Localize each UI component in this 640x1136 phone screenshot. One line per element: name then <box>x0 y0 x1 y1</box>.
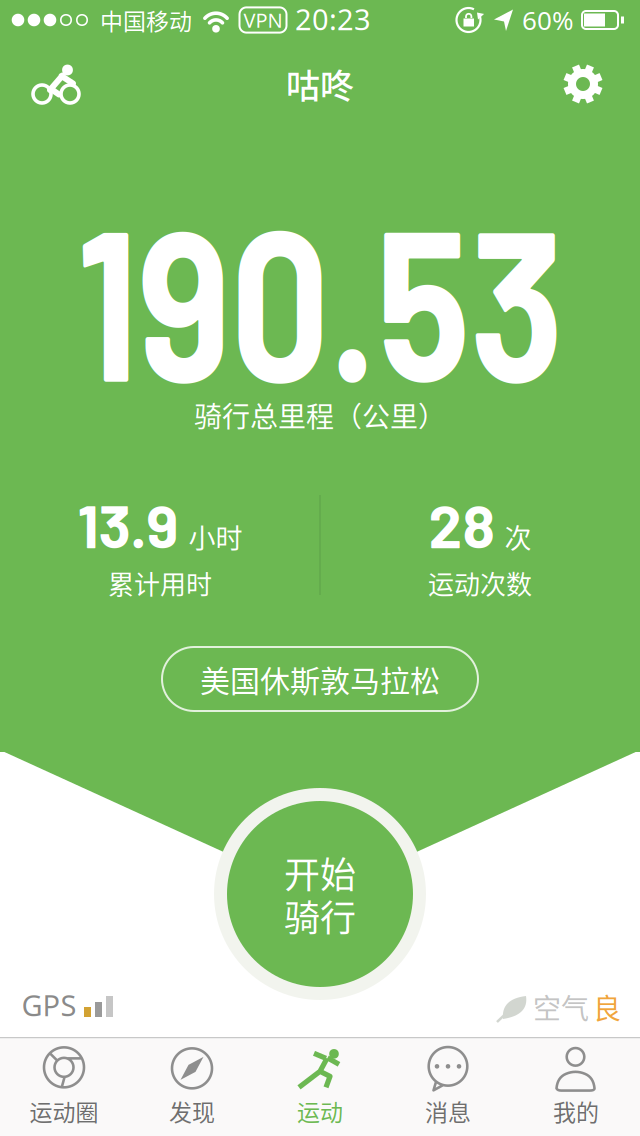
button[interactable]: 骑行记录 <box>22 52 94 116</box>
staticText: 发现 <box>169 1094 215 1128</box>
button[interactable]: 我的 <box>512 1038 640 1134</box>
staticText: 190.53 <box>23 170 617 424</box>
staticText: 小时 <box>188 517 242 556</box>
staticText: 累计用时 <box>108 564 212 602</box>
staticText: 28 <box>428 488 494 560</box>
staticText: GPS <box>21 985 76 1025</box>
staticText: 空气 <box>533 987 589 1027</box>
staticText: 消息 <box>425 1094 471 1128</box>
staticText: 13.9 <box>77 488 178 560</box>
button[interactable]: 美国休斯敦马拉松 <box>161 646 479 712</box>
button[interactable]: 开始 <box>214 788 426 1000</box>
button[interactable]: 消息 <box>384 1038 512 1134</box>
staticText: 我的 <box>553 1094 599 1128</box>
button[interactable]: 设置 <box>555 56 611 112</box>
staticText: 运动次数 <box>428 564 532 602</box>
staticText: 60% <box>522 2 574 38</box>
staticText: 美国休斯敦马拉松 <box>200 657 440 701</box>
staticText: 运动圈 <box>29 1094 98 1128</box>
staticText: 中国移动 <box>100 3 192 37</box>
staticText: 次 <box>504 517 531 556</box>
button[interactable]: 运动 <box>256 1038 384 1134</box>
staticText: 开始 <box>284 846 356 898</box>
staticText: 20:23 <box>295 0 371 39</box>
button[interactable]: 发现 <box>128 1038 256 1134</box>
staticText: 运动 <box>297 1094 343 1128</box>
staticText: 骑行 <box>284 889 356 942</box>
staticText: VPN <box>243 6 282 34</box>
staticText: 咕咚 <box>286 59 354 109</box>
staticText: 骑行总里程（公里） <box>194 395 446 435</box>
staticText: 良 <box>593 987 621 1027</box>
button[interactable]: 运动圈 <box>0 1038 128 1134</box>
